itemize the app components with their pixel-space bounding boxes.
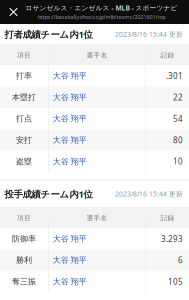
staticText: 10 [173, 156, 183, 167]
staticText: 80 [173, 135, 183, 145]
staticText: 大谷 翔平 [53, 157, 87, 166]
staticText: 記録 [160, 214, 174, 222]
staticText: 記録 [160, 51, 174, 59]
staticText: 105 [168, 276, 183, 287]
staticText: 2023/8/16 15:44 更新 [115, 30, 183, 39]
staticText: ロサンゼルス・エンゼルス - MLB - スポーツナビ [25, 3, 177, 12]
button[interactable]: 勝利 [0, 249, 189, 271]
button[interactable]: 閉じる [0, 0, 27, 24]
staticText: 打点 [16, 114, 32, 124]
staticText: 大谷 翔平 [53, 71, 87, 81]
staticText: 打者成績チーム内1位 [4, 28, 92, 40]
staticText: 防御率 [12, 234, 36, 244]
button[interactable]: 防御率 [0, 228, 189, 249]
button[interactable]: 打率 [0, 65, 189, 87]
staticText: 大谷 翔平 [53, 234, 87, 244]
staticText: 項目 [17, 214, 31, 222]
staticText: 6 [178, 255, 183, 265]
staticText: 勝利 [16, 255, 32, 265]
staticText: 安打 [16, 135, 32, 145]
staticText: 大谷 翔平 [53, 135, 87, 145]
staticText: 選手名 [86, 51, 107, 59]
button[interactable]: 安打 [0, 129, 189, 151]
staticText: 22 [173, 92, 183, 103]
staticText: 項目 [17, 51, 31, 59]
staticText: 54 [173, 113, 183, 124]
staticText: .301 [166, 71, 183, 81]
button[interactable]: 打点 [0, 108, 189, 129]
staticText: 打率 [16, 71, 32, 81]
button[interactable]: 盗塁 [0, 151, 189, 172]
staticText: 大谷 翔平 [53, 114, 87, 124]
staticText: 大谷 翔平 [53, 255, 87, 265]
staticText: https://baseball.yahoo.co.jp/mlb/teams/2… [37, 13, 165, 21]
button[interactable]: 本塁打 [0, 87, 189, 108]
staticText: 大谷 翔平 [53, 277, 87, 286]
staticText: 3.293 [161, 233, 183, 244]
staticText: 投手成績チーム内1位 [4, 188, 92, 200]
staticText: 奪三振 [12, 277, 36, 286]
staticText: 盗塁 [16, 157, 32, 166]
staticText: 本塁打 [12, 92, 36, 102]
staticText: 大谷 翔平 [53, 92, 87, 102]
button[interactable]: 奪三振 [0, 271, 189, 292]
staticText: 選手名 [86, 214, 107, 222]
staticText: 2023/8/16 15:44 更新 [115, 189, 183, 198]
